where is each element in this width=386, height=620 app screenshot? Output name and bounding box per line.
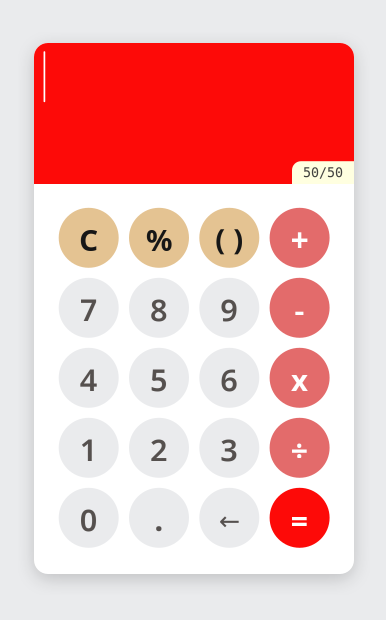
staticText: ← <box>219 507 240 535</box>
staticText: 6 <box>220 359 238 400</box>
button[interactable]: Delete <box>199 488 259 548</box>
staticText: + <box>291 218 309 261</box>
button[interactable]: Equals <box>270 488 330 548</box>
staticText: 3 <box>220 429 238 470</box>
staticText: ÷ <box>291 429 309 470</box>
button[interactable]: Decimal point <box>129 488 189 548</box>
staticText: 1 <box>80 429 98 470</box>
staticText: . <box>154 499 163 540</box>
staticText: x <box>291 360 308 399</box>
button[interactable]: Percent <box>129 208 189 268</box>
staticText: % <box>146 220 172 259</box>
button[interactable]: Divide <box>270 418 330 478</box>
staticText: 8 <box>150 289 168 330</box>
staticText: 50/50 <box>303 165 343 180</box>
button[interactable]: 0 <box>59 488 119 548</box>
button[interactable]: 8 <box>129 278 189 338</box>
staticText: = <box>291 500 309 540</box>
button[interactable]: 5 <box>129 348 189 408</box>
button[interactable]: Parentheses <box>199 208 259 268</box>
button[interactable]: Multiply <box>270 348 330 408</box>
staticText: 7 <box>80 289 98 330</box>
button[interactable]: 9 <box>199 278 259 338</box>
button[interactable]: 3 <box>199 418 259 478</box>
staticText: 5 <box>150 359 168 400</box>
button[interactable]: 2 <box>129 418 189 478</box>
button[interactable]: 6 <box>199 348 259 408</box>
button[interactable]: Plus <box>270 208 330 268</box>
button[interactable]: 4 <box>59 348 119 408</box>
button[interactable]: 7 <box>59 278 119 338</box>
staticText: 4 <box>80 359 98 400</box>
staticText: C <box>79 220 98 259</box>
staticText: 9 <box>220 289 238 330</box>
button[interactable]: Minus <box>270 278 330 338</box>
button[interactable]: Clear <box>59 208 119 268</box>
button[interactable]: 1 <box>59 418 119 478</box>
staticText: 2 <box>150 429 168 470</box>
staticText: - <box>295 289 305 330</box>
staticText: ( ) <box>215 219 243 258</box>
staticText: 0 <box>80 499 98 540</box>
